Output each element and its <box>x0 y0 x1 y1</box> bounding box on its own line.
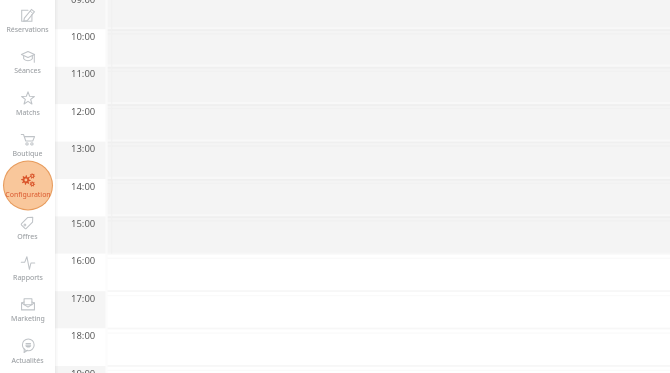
staticText: 09:00 <box>71 0 96 6</box>
staticText: 17:00 <box>71 292 96 305</box>
staticText: 15:00 <box>71 217 96 230</box>
button[interactable]: Actualités <box>0 331 55 372</box>
staticText: Matchs <box>16 108 40 118</box>
button[interactable]: Boutique <box>0 124 55 165</box>
staticText: Configuration <box>5 190 51 200</box>
staticText: 14:00 <box>71 180 96 193</box>
staticText: Marketing <box>11 314 45 324</box>
button[interactable]: Rapports <box>0 248 55 289</box>
staticText: 10:00 <box>71 30 96 43</box>
button[interactable]: Séances <box>0 41 55 82</box>
staticText: 16:00 <box>71 254 96 267</box>
staticText: 19:00 <box>71 367 96 373</box>
staticText: Séances <box>14 66 41 76</box>
button[interactable]: Offres <box>0 207 55 248</box>
staticText: 18:00 <box>71 329 96 342</box>
button[interactable]: Marketing <box>0 289 55 330</box>
staticText: 11:00 <box>71 67 96 80</box>
staticText: Réservations <box>6 25 49 35</box>
staticText: 12:00 <box>71 105 96 118</box>
button[interactable]: Matchs <box>0 83 55 124</box>
staticText: Offres <box>17 232 38 242</box>
button[interactable]: Réservations <box>0 0 55 41</box>
staticText: Rapports <box>13 273 43 283</box>
staticText: Boutique <box>12 149 43 159</box>
staticText: 13:00 <box>71 142 96 155</box>
button[interactable]: Configuration <box>0 165 55 206</box>
staticText: Actualités <box>11 356 44 366</box>
